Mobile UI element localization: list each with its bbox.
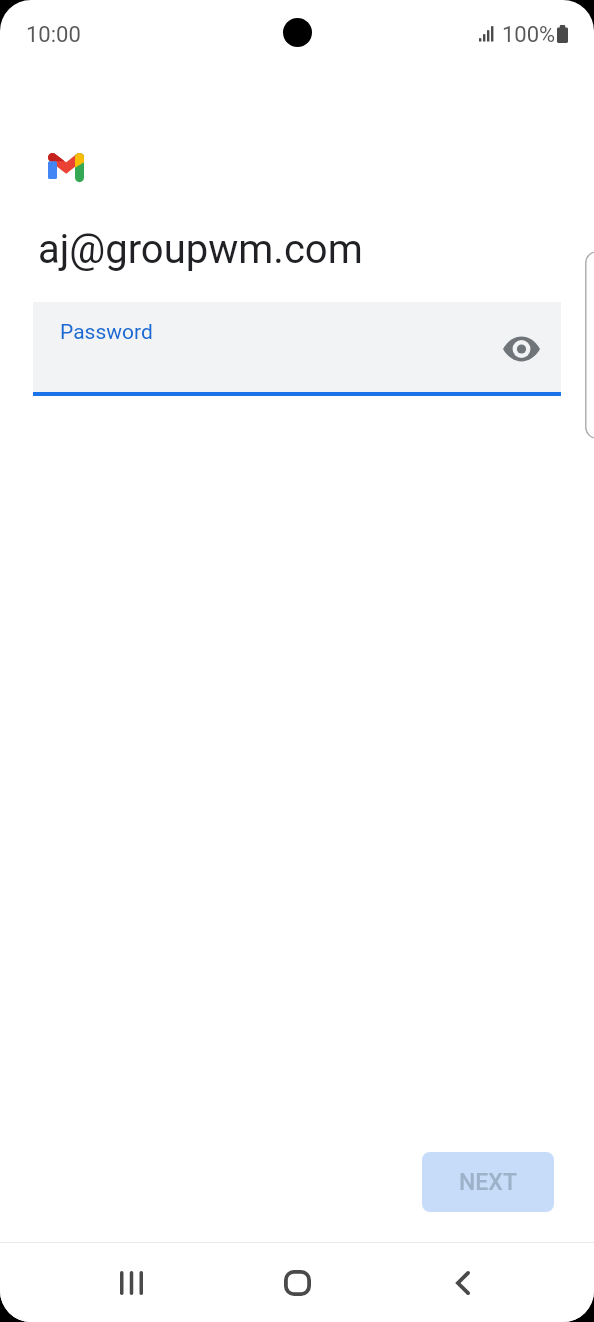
staticText: 100% — [502, 22, 556, 48]
staticText: Password — [60, 320, 153, 345]
staticText: NEXT — [459, 1169, 517, 1196]
button[interactable]: Recents — [77, 1245, 185, 1321]
button[interactable]: Back — [409, 1245, 517, 1321]
button[interactable]: Show password — [493, 321, 549, 377]
staticText: 10:00 — [26, 22, 81, 48]
button[interactable]: Password — [33, 302, 561, 396]
button[interactable]: Home — [243, 1245, 351, 1321]
staticText: aj@groupwm.com — [38, 226, 363, 273]
button[interactable]: NEXT — [422, 1152, 554, 1212]
